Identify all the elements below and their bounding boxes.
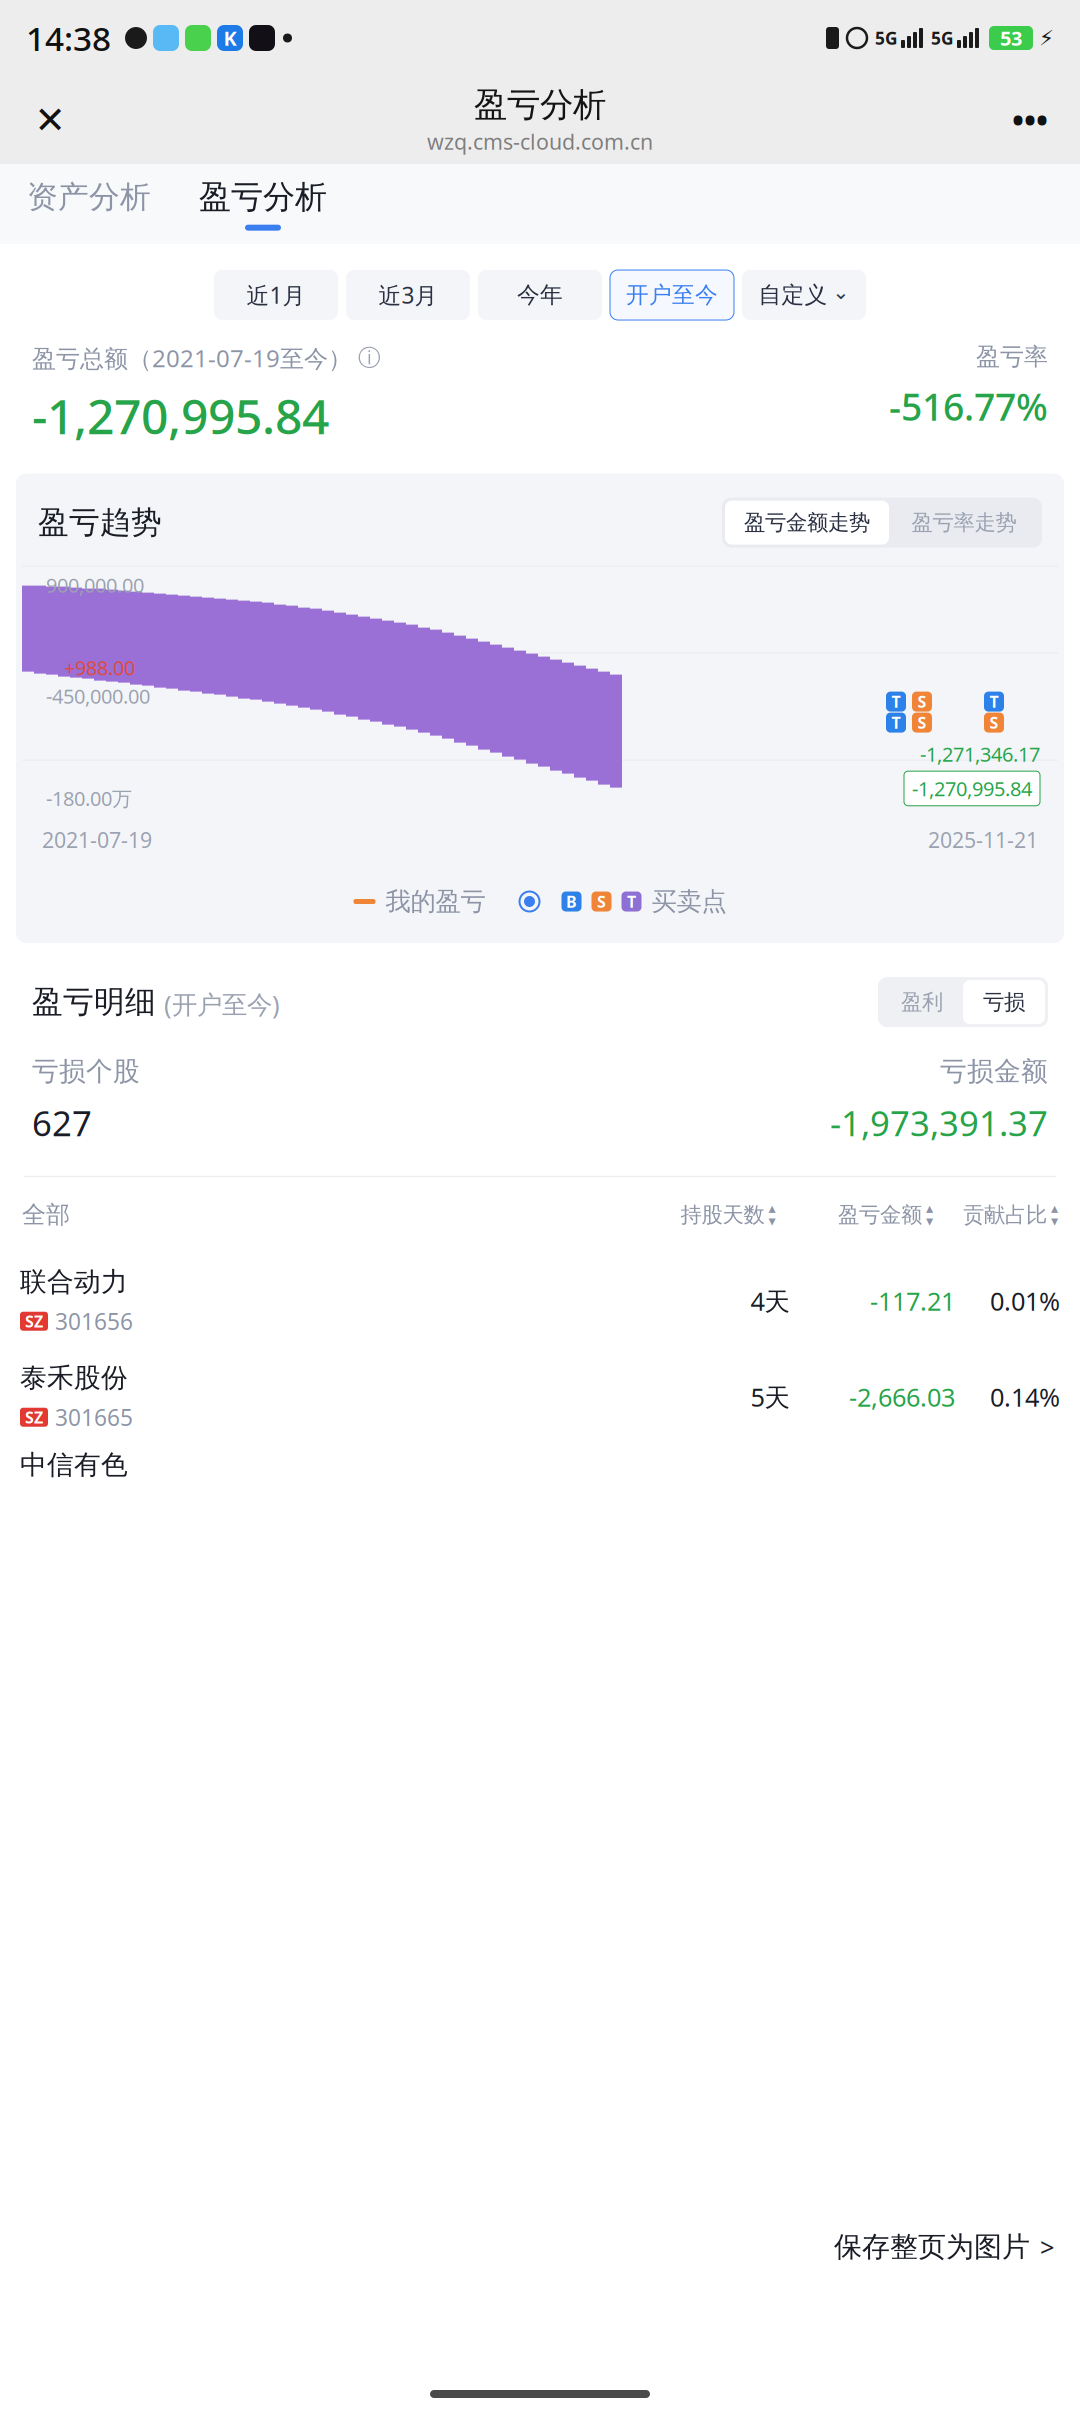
staticText: wzq.cms-cloud.com.cn xyxy=(427,127,653,156)
button[interactable]: 盈亏率走势 xyxy=(889,501,1039,545)
staticText: 自定义 xyxy=(758,281,827,309)
button[interactable]: 资产分析 xyxy=(14,167,164,241)
staticText: 贡献占比 xyxy=(963,1202,1047,1228)
staticText: 盈亏分析 xyxy=(474,84,606,125)
staticText: 盈亏金额 xyxy=(838,1202,922,1228)
button[interactable]: 亏损 xyxy=(963,980,1045,1024)
staticText: ▲ xyxy=(768,1203,775,1214)
staticText: T xyxy=(891,712,900,733)
staticText: ▼ xyxy=(926,1216,933,1226)
button[interactable]: 自定义 xyxy=(742,270,866,320)
staticText: 亏损 xyxy=(983,989,1025,1015)
button[interactable]: 盈利 xyxy=(881,980,963,1024)
staticText: 301656 xyxy=(55,1306,133,1336)
staticText: 4天 xyxy=(750,1284,789,1318)
staticText: ▼ xyxy=(768,1216,775,1226)
button[interactable]: 近1月 xyxy=(214,270,338,320)
staticText: 盈亏趋势 xyxy=(38,504,162,541)
staticText: 900,000.00 xyxy=(46,572,144,598)
staticText: 今年 xyxy=(517,281,563,309)
staticText: ⓘ xyxy=(358,344,381,372)
staticText: 全部 xyxy=(22,1200,70,1230)
staticText: -1,270,995.84 xyxy=(32,384,329,448)
staticText: ⚡︎ xyxy=(1039,26,1054,50)
staticText: -450,000.00 xyxy=(46,683,150,709)
button[interactable]: 开户至今 xyxy=(610,270,734,320)
staticText: +988.00 xyxy=(64,654,135,681)
staticText: 盈亏金额走势 xyxy=(744,509,870,536)
staticText: 亏损个股 xyxy=(32,1055,140,1088)
staticText: 近1月 xyxy=(246,280,305,310)
button[interactable]: Close xyxy=(20,90,80,150)
staticText: 0.14% xyxy=(990,1380,1060,1414)
button[interactable]: 今年 xyxy=(478,270,602,320)
button[interactable]: 泰禾股份 xyxy=(0,1349,1080,1445)
staticText: ✕ xyxy=(34,99,65,141)
staticText: 开户至今 xyxy=(626,281,718,309)
staticText: ▲ xyxy=(1051,1203,1058,1214)
button[interactable]: 保存整页为图片 xyxy=(808,2210,1080,2284)
staticText: 盈亏总额（2021-07-19至今） xyxy=(32,342,352,374)
staticText: 资产分析 xyxy=(27,178,151,216)
staticText: 买卖点 xyxy=(651,886,726,917)
staticText: T xyxy=(891,691,900,712)
staticText: K xyxy=(223,25,236,51)
button[interactable]: 近3月 xyxy=(346,270,470,320)
staticText: 保存整页为图片 xyxy=(834,2230,1030,2264)
staticText: 2025-11-21 xyxy=(928,826,1038,854)
staticText: 53 xyxy=(1000,25,1022,51)
staticText: 盈亏率走势 xyxy=(911,509,1016,536)
staticText: T xyxy=(989,691,998,712)
staticText: (开户至今) xyxy=(164,987,280,1021)
staticText: ▼ xyxy=(1051,1216,1058,1226)
staticText: SZ xyxy=(25,1311,43,1332)
staticText: 联合动力 xyxy=(20,1265,128,1298)
staticText: 中信有色 xyxy=(20,1448,128,1481)
staticText: ▲ xyxy=(926,1203,933,1214)
staticText: ••• xyxy=(1012,99,1048,141)
staticText: S xyxy=(917,712,926,733)
staticText: 5天 xyxy=(750,1380,789,1414)
staticText: ⌄ xyxy=(832,281,849,303)
button[interactable]: More xyxy=(1000,90,1060,150)
staticText: 近3月 xyxy=(378,280,437,310)
staticText: -2,666.03 xyxy=(849,1380,955,1414)
staticText: T xyxy=(627,891,636,912)
button[interactable]: 联合动力 xyxy=(0,1253,1080,1349)
staticText: S xyxy=(917,691,926,712)
staticText: SZ xyxy=(25,1407,43,1428)
staticText: B xyxy=(566,891,577,912)
staticText: -1,271,346.17 xyxy=(920,741,1040,767)
staticText: 我的盈亏 xyxy=(385,886,485,917)
staticText: S xyxy=(597,891,606,912)
staticText: 14:38 xyxy=(26,16,111,60)
staticText: S xyxy=(989,712,998,733)
staticText: -180.00万 xyxy=(46,785,132,812)
button[interactable]: 盈亏分析 xyxy=(188,167,338,241)
staticText: 627 xyxy=(32,1100,92,1146)
staticText: 盈亏分析 xyxy=(199,177,327,217)
staticText: 0.01% xyxy=(990,1284,1060,1318)
staticText: 盈亏明细 xyxy=(32,983,156,1021)
staticText: 5G xyxy=(875,26,898,49)
staticText: 5G xyxy=(931,26,954,49)
staticText: -1,973,391.37 xyxy=(830,1100,1048,1146)
staticText: 2021-07-19 xyxy=(42,826,152,854)
staticText: 亏损金额 xyxy=(940,1055,1048,1088)
staticText: -117.21 xyxy=(870,1284,955,1318)
staticText: 301665 xyxy=(55,1402,133,1432)
staticText: 盈亏率 xyxy=(976,342,1048,371)
staticText: 盈利 xyxy=(901,989,943,1015)
button[interactable]: 盈亏金额走势 xyxy=(725,501,889,545)
staticText: 持股天数 xyxy=(680,1202,764,1228)
staticText: 泰禾股份 xyxy=(20,1361,128,1394)
staticText: -1,270,995.84 xyxy=(912,775,1032,802)
staticText: > xyxy=(1040,2230,1054,2264)
staticText: -516.77% xyxy=(889,381,1048,431)
